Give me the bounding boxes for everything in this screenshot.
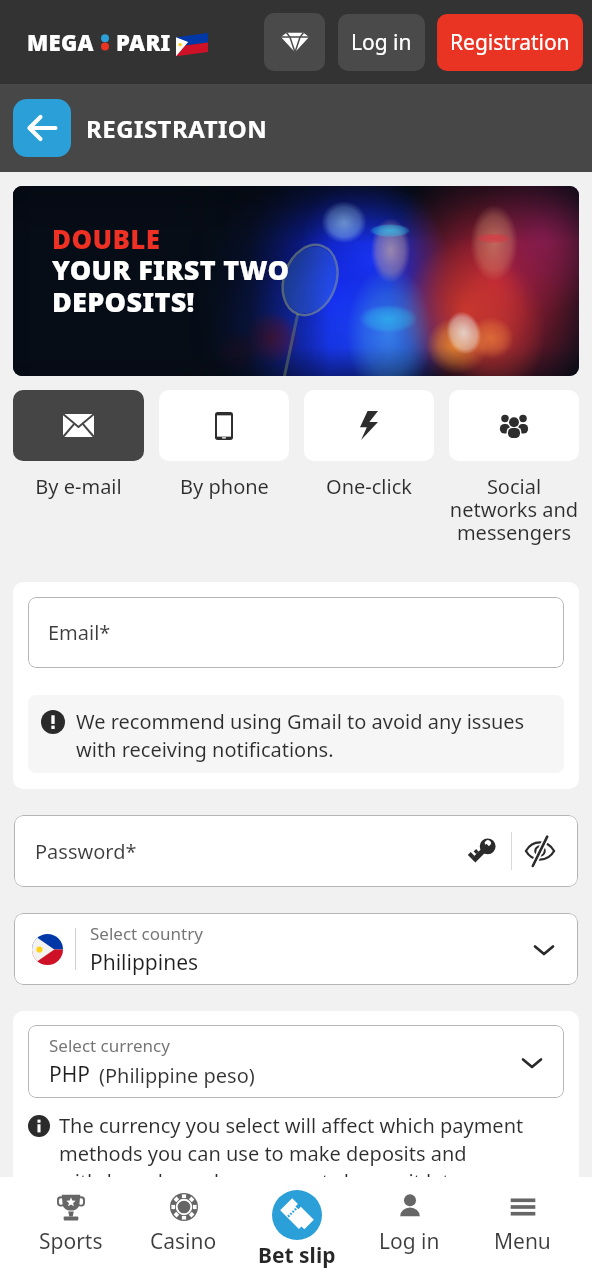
button[interactable]: Bet slip [240,1190,353,1270]
staticText: The currency you select will affect whic… [59,1112,564,1195]
staticText: Casino [150,1227,217,1256]
button[interactable]: Email* [28,597,564,668]
button[interactable]: Promo [264,13,325,71]
staticText: Menu [494,1227,551,1256]
staticText: YOUR FIRST TWO DEPOSITS! [52,251,290,320]
button[interactable]: Log in [353,1190,466,1256]
staticText: Philippines [90,948,199,977]
button[interactable]: Registration [437,14,583,71]
staticText: We recommend using Gmail to avoid any is… [76,708,554,763]
staticText: Registration [450,28,570,57]
staticText: Log in [379,1227,440,1256]
staticText: One-click [326,473,412,500]
staticText: By phone [180,473,269,500]
button[interactable]: Menu [466,1190,579,1256]
staticText: (Philippine peso) [99,1062,255,1089]
staticText: PARI [116,27,171,57]
staticText: REGISTRATION [86,112,268,145]
staticText: Bet slip [258,1241,336,1270]
button[interactable]: One-click [304,390,434,500]
button[interactable]: Select country [14,913,578,985]
button[interactable]: Social networks and messengers [449,390,579,546]
staticText: Select country [90,922,203,945]
staticText: Password* [35,838,137,865]
button[interactable]: Show password [518,829,562,873]
button[interactable]: Sports [14,1190,127,1256]
button[interactable]: By e-mail [13,390,144,500]
staticText: MEGA [27,27,94,57]
staticText: Log in [351,28,412,57]
staticText: Social networks and messengers [449,473,579,546]
button[interactable]: Back [13,99,71,157]
button[interactable]: Generate password [461,829,505,873]
staticText: Email* [48,619,111,646]
staticText: PHP [49,1060,90,1089]
button[interactable]: Log in [338,14,425,71]
staticText: Select currency [49,1034,170,1057]
staticText: By e-mail [35,473,122,500]
button[interactable]: By phone [159,390,289,500]
button[interactable]: Select currency [28,1025,564,1098]
staticText: Sports [39,1227,103,1256]
button[interactable]: Casino [127,1190,240,1256]
staticText: DOUBLE [52,221,161,256]
